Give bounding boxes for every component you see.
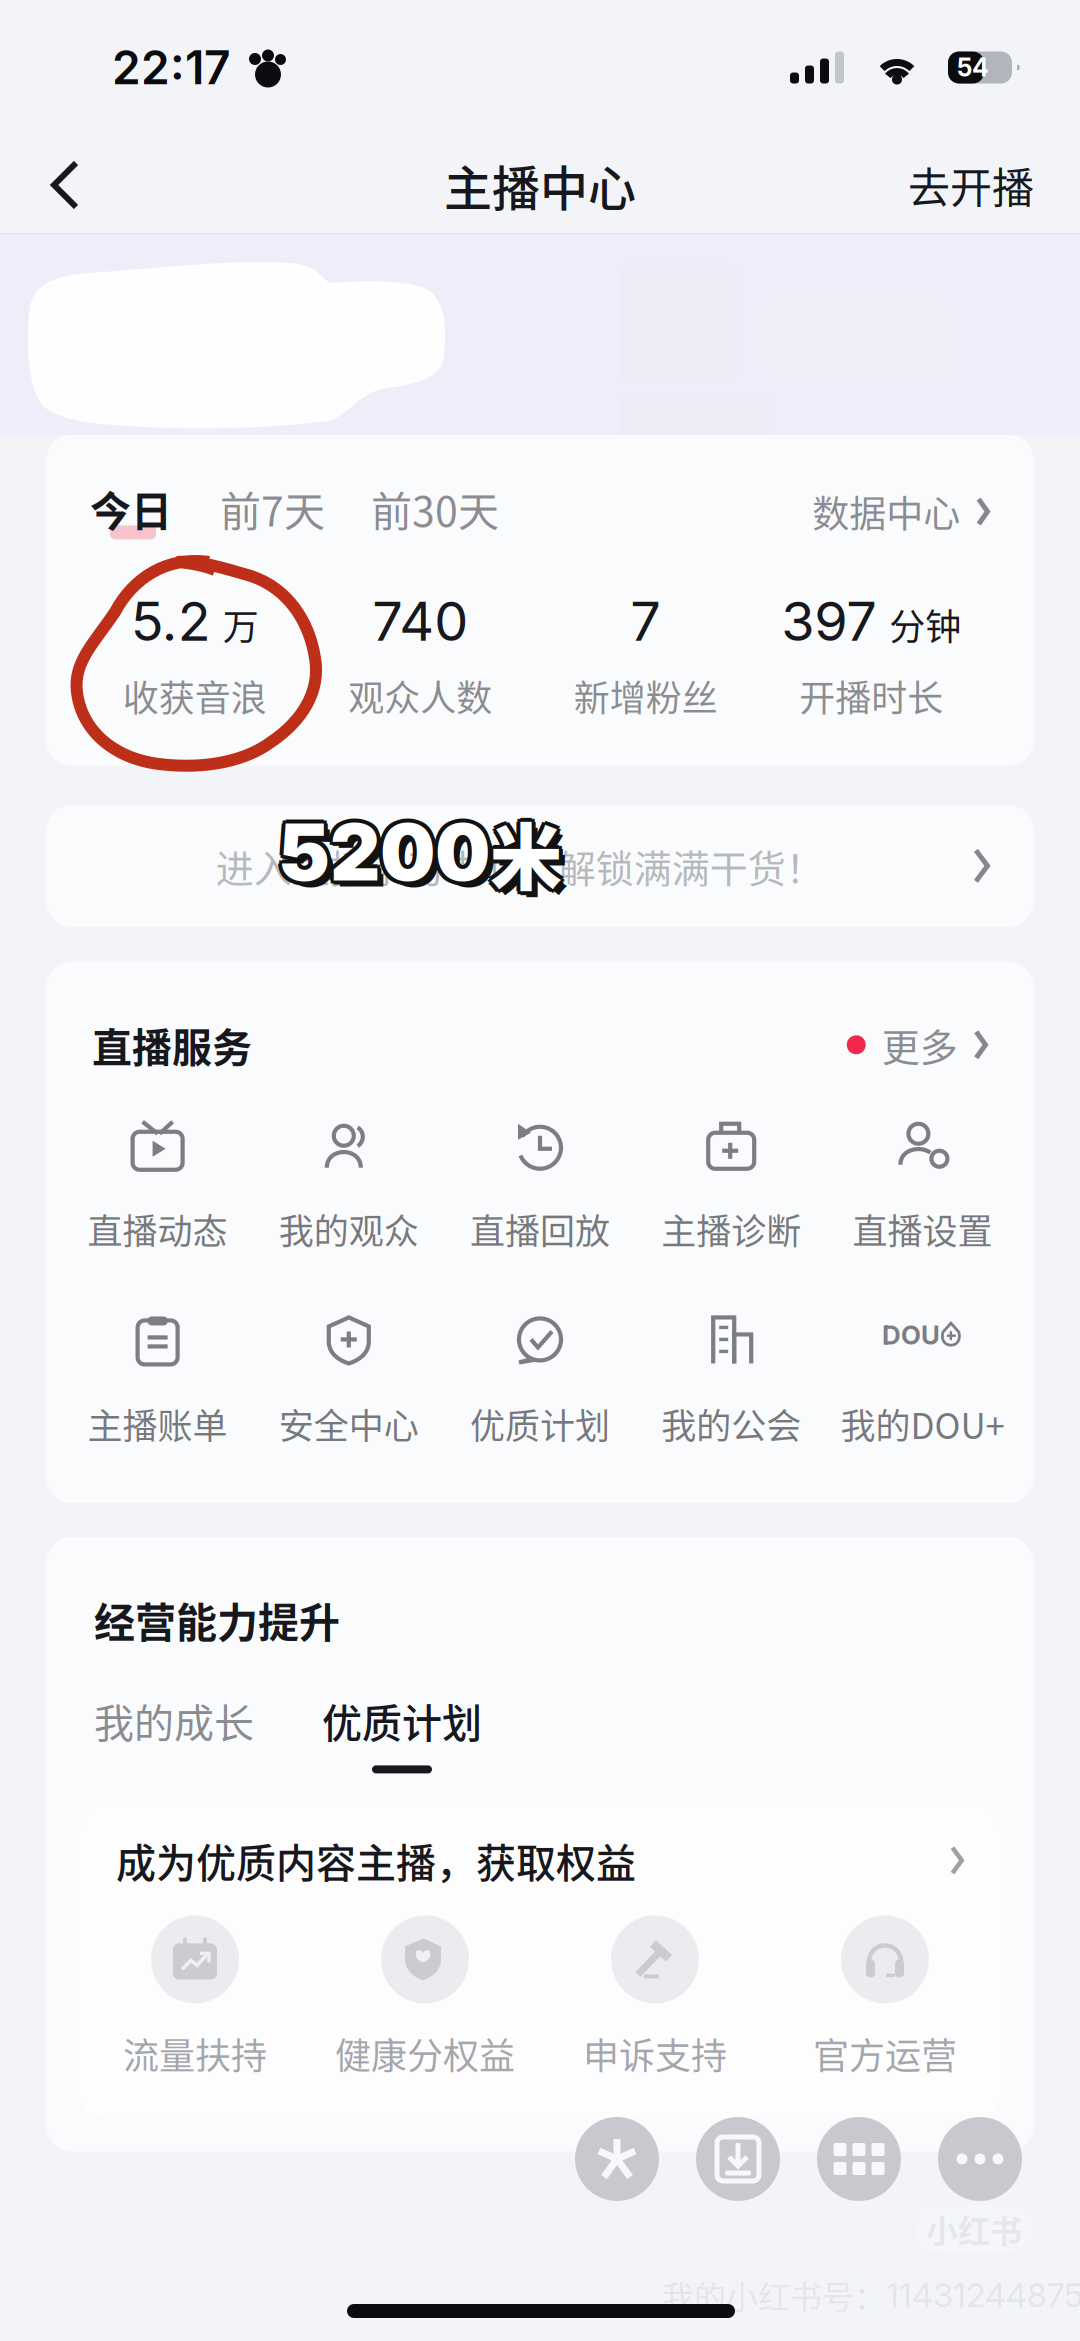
staticText: 7 bbox=[630, 588, 661, 654]
staticText: 我的公会 bbox=[661, 1398, 801, 1449]
button[interactable]: 主播账单 bbox=[62, 1314, 253, 1449]
staticText: 分钟 bbox=[889, 599, 961, 651]
staticText: 安全中心 bbox=[279, 1398, 419, 1449]
button[interactable]: Highlight bbox=[575, 2117, 659, 2201]
staticText: 397 bbox=[781, 588, 877, 654]
staticText: 5200 bbox=[282, 805, 494, 899]
staticText: 米 bbox=[487, 803, 559, 907]
button[interactable]: 数据中心 bbox=[812, 485, 990, 538]
button[interactable]: 去开播 bbox=[908, 135, 1080, 235]
staticText: 主播账单 bbox=[88, 1398, 228, 1449]
staticText: 我的成长 bbox=[94, 1691, 254, 1749]
button[interactable]: Grid bbox=[817, 2117, 901, 2201]
button[interactable]: 直播设置 bbox=[827, 1120, 1018, 1254]
button[interactable]: 直播回放 bbox=[444, 1120, 636, 1254]
staticText: 5200 bbox=[281, 808, 493, 902]
staticText: 去开播 bbox=[908, 155, 1034, 215]
staticText: 5200 bbox=[275, 802, 487, 896]
button[interactable]: 前30天 bbox=[371, 479, 499, 538]
staticText: 5200 bbox=[278, 809, 490, 903]
staticText: 米 bbox=[490, 796, 562, 900]
button[interactable]: 流量扶持 bbox=[80, 1915, 310, 2079]
staticText: DOU bbox=[882, 1319, 940, 1351]
staticText: 数据中心 bbox=[812, 485, 960, 538]
staticText: 主播诊断 bbox=[661, 1204, 801, 1254]
button[interactable]: 今日 bbox=[90, 479, 172, 538]
staticText: 5200 bbox=[274, 805, 486, 899]
staticText: 直播服务 bbox=[92, 1016, 252, 1074]
staticText: 优质计划 bbox=[470, 1398, 610, 1449]
button[interactable]: 更多 bbox=[847, 1017, 988, 1072]
staticText: 米 bbox=[493, 797, 565, 901]
staticText: 22:17 bbox=[112, 40, 231, 95]
staticText: 米 bbox=[487, 797, 559, 901]
button[interactable]: 优质计划 bbox=[444, 1314, 636, 1449]
staticText: 官方运营 bbox=[813, 2027, 957, 2079]
button[interactable]: 我的成长 bbox=[94, 1691, 254, 1749]
staticText: 5200 bbox=[281, 802, 493, 896]
staticText: 米 bbox=[490, 804, 562, 908]
button[interactable]: 官方运营 bbox=[770, 1915, 1000, 2079]
staticText: 观众人数 bbox=[348, 670, 492, 722]
staticText: 5.2 bbox=[131, 588, 211, 654]
staticText: 直播设置 bbox=[852, 1204, 992, 1254]
staticText: 申诉支持 bbox=[583, 2027, 727, 2079]
staticText: 成为优质内容主播，获取权益 bbox=[116, 1831, 636, 1889]
button[interactable]: 主播诊断 bbox=[636, 1120, 827, 1254]
button[interactable]: 健康分权益 bbox=[310, 1915, 540, 2079]
staticText: 万 bbox=[223, 599, 259, 651]
staticText: 流量扶持 bbox=[123, 2027, 267, 2079]
button[interactable]: More bbox=[938, 2117, 1022, 2201]
staticText: 5200 bbox=[278, 801, 490, 895]
staticText: 收获音浪 bbox=[123, 670, 267, 722]
staticText: 主播中心 bbox=[444, 150, 636, 220]
staticText: 5200 bbox=[278, 805, 490, 899]
button[interactable]: 前7天 bbox=[220, 479, 325, 538]
staticText: 我的观众 bbox=[279, 1204, 419, 1254]
staticText: 今日 bbox=[90, 479, 172, 538]
staticText: 优质计划 bbox=[322, 1691, 482, 1749]
staticText: 11431244875 bbox=[886, 2275, 1080, 2315]
staticText: 5200 bbox=[275, 808, 487, 902]
button[interactable]: 申诉支持 bbox=[540, 1915, 770, 2079]
staticText: 小红书 bbox=[926, 2206, 1022, 2252]
button[interactable]: Back bbox=[0, 135, 130, 235]
staticText: 开播时长 bbox=[799, 670, 943, 722]
button[interactable]: 我的观众 bbox=[253, 1120, 444, 1254]
staticText: 米 bbox=[490, 800, 562, 904]
staticText: 米 bbox=[496, 806, 568, 910]
staticText: 前7天 bbox=[220, 479, 325, 538]
staticText: 进入直播学习中心，解锁满满干货！ bbox=[216, 838, 824, 893]
staticText: 54 bbox=[957, 52, 989, 83]
staticText: 直播回放 bbox=[470, 1204, 610, 1254]
button[interactable]: Save bbox=[696, 2117, 780, 2201]
button[interactable]: 进入直播学习中心，解锁满满干货！ bbox=[0, 805, 1080, 927]
button[interactable]: 直播动态 bbox=[62, 1120, 253, 1254]
staticText: 直播动态 bbox=[88, 1204, 228, 1254]
staticText: 前30天 bbox=[371, 479, 499, 538]
staticText: 更多 bbox=[882, 1017, 958, 1072]
staticText: 健康分权益 bbox=[335, 2027, 515, 2079]
staticText: 740 bbox=[372, 588, 468, 654]
button[interactable]: DOU bbox=[827, 1314, 1018, 1449]
staticText: 我的小红书号： bbox=[662, 2272, 886, 2318]
staticText: 5200 bbox=[284, 811, 496, 905]
staticText: 我的DOU+ bbox=[840, 1398, 1004, 1449]
button[interactable]: 优质计划 bbox=[322, 1691, 482, 1773]
staticText: 米 bbox=[493, 803, 565, 907]
button[interactable]: 成为优质内容主播，获取权益 bbox=[80, 1805, 1000, 1915]
button[interactable]: 安全中心 bbox=[253, 1314, 444, 1449]
staticText: 经营能力提升 bbox=[94, 1590, 340, 1649]
button[interactable]: 我的公会 bbox=[636, 1314, 827, 1449]
staticText: 米 bbox=[486, 800, 558, 904]
staticText: 新增粉丝 bbox=[574, 670, 718, 722]
staticText: 米 bbox=[494, 800, 566, 904]
